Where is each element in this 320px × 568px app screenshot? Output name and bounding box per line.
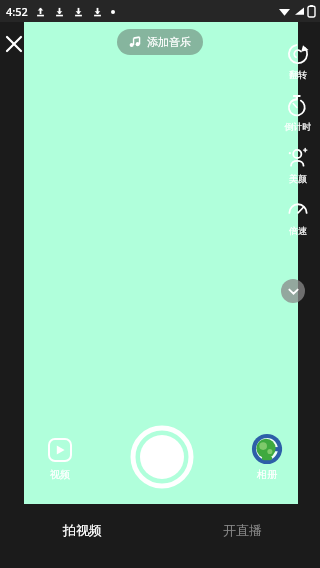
staticText: 开直播: [223, 522, 262, 538]
button[interactable]: 添加音乐: [117, 29, 203, 55]
button[interactable]: 相册: [245, 433, 289, 481]
staticText: 翻转: [276, 69, 320, 80]
button[interactable]: Close: [0, 22, 28, 66]
staticText: 倒计时: [276, 121, 320, 132]
staticText: 相册: [245, 468, 289, 481]
button[interactable]: Countdown: [276, 94, 320, 132]
staticText: 倍速: [276, 225, 320, 236]
button[interactable]: 视频: [36, 437, 84, 481]
staticText: 拍视频: [63, 522, 102, 538]
staticText: 美颜: [276, 173, 320, 184]
staticText: 添加音乐: [147, 35, 191, 49]
button[interactable]: Record: [132, 427, 192, 487]
staticText: 4:52: [6, 4, 28, 19]
button[interactable]: 拍视频: [40, 516, 124, 544]
staticText: 视频: [36, 468, 84, 481]
button[interactable]: Speed: [276, 198, 320, 236]
button[interactable]: Collapse: [281, 279, 305, 303]
button[interactable]: 开直播: [200, 516, 284, 544]
button[interactable]: Flip camera: [276, 42, 320, 80]
button[interactable]: Beauty: [276, 146, 320, 184]
